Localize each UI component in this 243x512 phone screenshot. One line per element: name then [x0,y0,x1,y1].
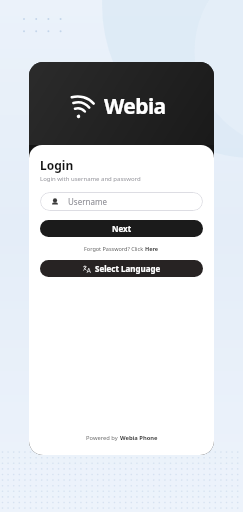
staticText: Username [68,196,107,207]
staticText: Webia [104,92,166,121]
staticText: Login [40,157,74,173]
staticText: Next [112,223,132,234]
button[interactable]: Next [40,220,203,237]
staticText: Powered by [86,434,120,442]
other: Select Language [83,265,91,273]
staticText: Select Language [95,263,161,274]
button[interactable]: Select Language [40,260,203,277]
button[interactable]: Forgot Password? Click [40,245,203,252]
staticText: Login with username and password [40,175,141,183]
staticText: Here [145,245,159,252]
button[interactable]: Username [40,192,203,211]
staticText: Webia Phone [120,434,158,442]
staticText: Forgot Password? Click [84,245,145,252]
